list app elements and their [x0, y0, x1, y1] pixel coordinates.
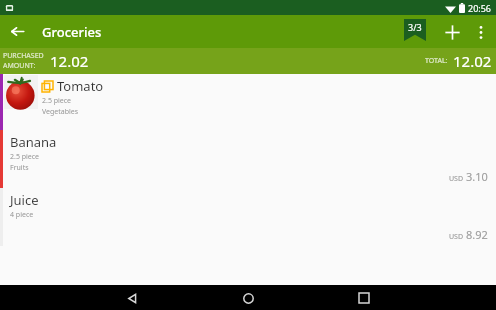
button[interactable]: Purchased — [458, 130, 496, 180]
staticText: Groceries — [42, 23, 102, 41]
staticText: Banana — [10, 133, 57, 151]
button[interactable]: Items purchased 3 of 3 — [402, 19, 428, 45]
button[interactable]: Back — [120, 286, 144, 310]
button[interactable]: More options — [468, 16, 494, 48]
button[interactable]: Juice — [0, 188, 496, 246]
staticText: 3/3 — [408, 21, 422, 33]
staticText: 2.5 piece — [42, 96, 72, 106]
staticText: Vegetables — [42, 107, 79, 117]
staticText: Fruits — [10, 163, 29, 173]
staticText: 8.92 — [466, 227, 488, 242]
staticText: 12.02 — [453, 51, 492, 71]
staticText: PURCHASED — [3, 51, 44, 61]
button[interactable]: Add item — [436, 16, 468, 48]
staticText: 12.02 — [50, 51, 89, 71]
button[interactable]: Tomato — [0, 74, 496, 130]
button[interactable]: Purchased — [458, 186, 496, 236]
staticText: Juice — [10, 191, 39, 209]
staticText: USD — [449, 174, 464, 184]
button[interactable]: Banana — [0, 130, 496, 188]
button[interactable]: Recent apps — [352, 286, 376, 310]
staticText: TOTAL: — [425, 56, 448, 66]
staticText: Tomato — [57, 77, 104, 95]
staticText: 3.10 — [466, 169, 488, 184]
staticText: AMOUNT: — [3, 61, 36, 71]
staticText: 20:56 — [468, 2, 492, 14]
staticText: 4 piece — [10, 210, 34, 220]
button[interactable]: Back — [0, 15, 34, 48]
staticText: 2.5 piece — [10, 152, 40, 162]
staticText: USD — [449, 232, 464, 242]
button[interactable]: Home — [236, 286, 260, 310]
